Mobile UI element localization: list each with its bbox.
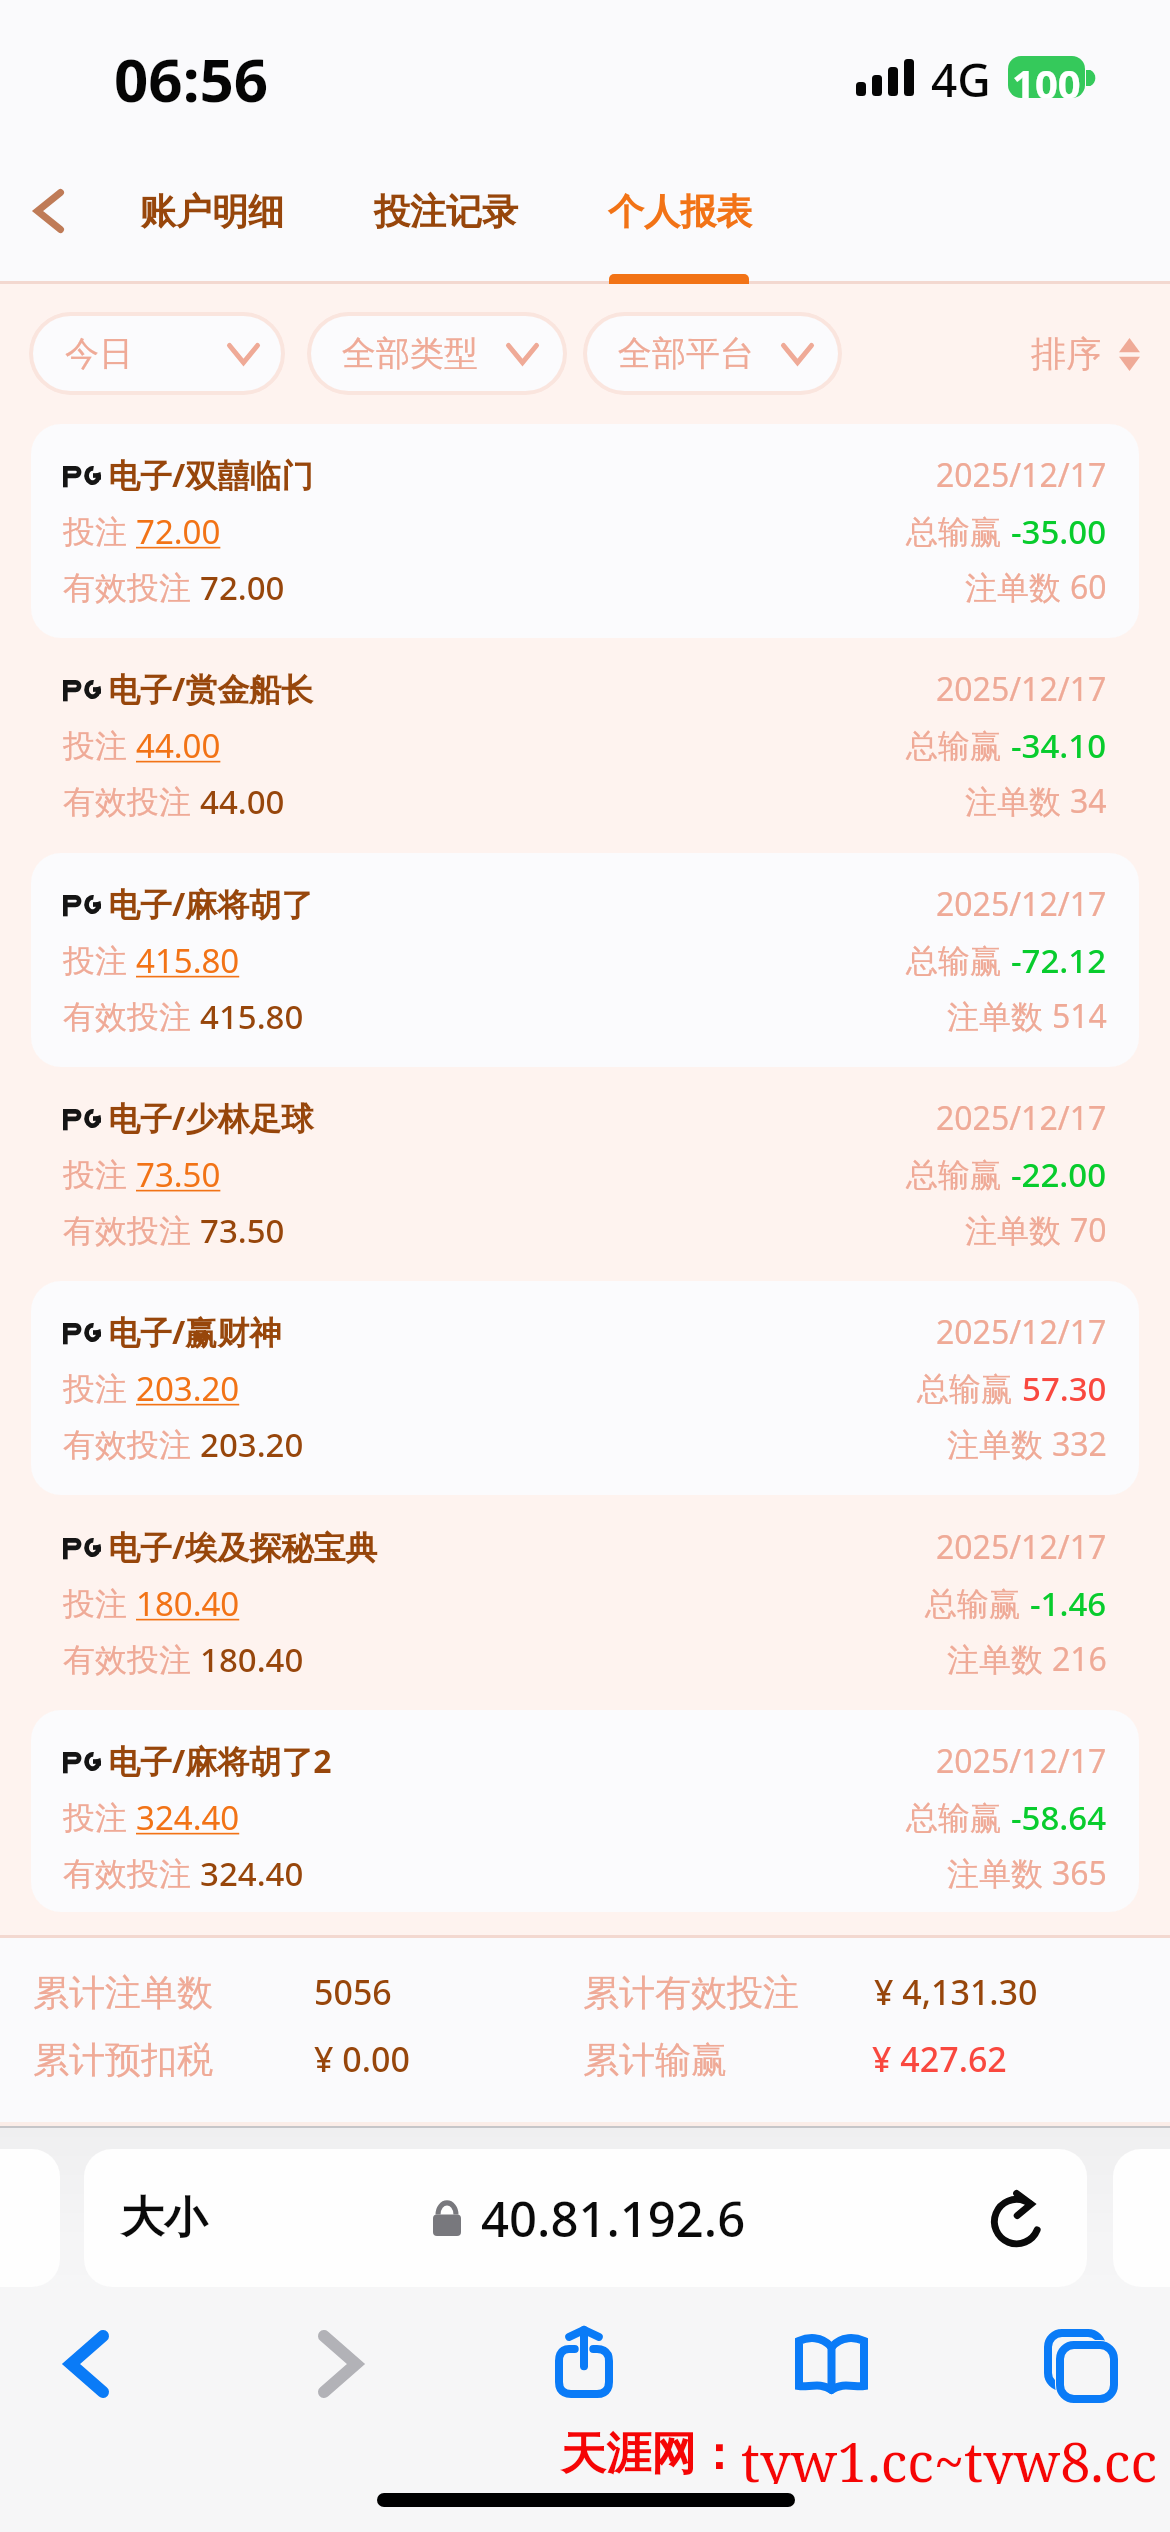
staticText: 投注 [63, 723, 136, 767]
staticText: 账户明细 [140, 189, 284, 234]
staticText: 总输赢 [906, 723, 1011, 767]
button[interactable]: Tabs [1031, 2316, 1127, 2412]
staticText: 总输赢 [917, 1366, 1022, 1410]
staticText: 投注 [63, 1581, 136, 1625]
button[interactable]: Back [39, 2316, 135, 2412]
button[interactable]: 个人报表 [592, 168, 768, 254]
staticText: 累计输赢 [583, 2037, 727, 2082]
staticText: 324.40 [136, 1795, 240, 1840]
staticText: 注单数 [947, 994, 1052, 1038]
staticText: 有效投注 [63, 779, 200, 823]
button[interactable]: Bookmarks [783, 2315, 879, 2411]
staticText: 72.00 [136, 509, 221, 554]
staticText: -72.12 [1011, 938, 1107, 983]
staticText: 有效投注 [63, 994, 200, 1038]
staticText: 5056 [314, 1969, 392, 2015]
staticText: -22.00 [1011, 1152, 1107, 1197]
staticText: 大小 [121, 2191, 207, 2245]
staticText: ¥ 4,131.30 [874, 1969, 1038, 2015]
staticText: 70 [1070, 1208, 1107, 1252]
staticText: 投注 [63, 509, 136, 553]
staticText: 有效投注 [63, 1422, 200, 1466]
button[interactable]: 电子/埃及探秘宝典 [0, 1496, 1170, 1710]
staticText: 44.00 [136, 723, 221, 768]
staticText: 总输赢 [906, 1795, 1011, 1839]
staticText: 100 [1012, 56, 1081, 98]
staticText: 06:56 [114, 38, 269, 120]
staticText: 44.00 [200, 779, 285, 824]
staticText: 全部类型 [342, 332, 478, 375]
button[interactable]: 全部类型 [311, 316, 563, 391]
staticText: -35.00 [1011, 509, 1107, 554]
staticText: 73.50 [136, 1152, 221, 1197]
staticText: 累计有效投注 [583, 1970, 799, 2015]
button[interactable]: Back [9, 170, 89, 252]
staticText: 电子/赏金船长 [108, 667, 314, 711]
staticText: 216 [1052, 1637, 1107, 1681]
button[interactable]: 电子/赢财神 [0, 1281, 1170, 1495]
staticText: 投注 [63, 938, 136, 982]
staticText: 有效投注 [63, 1208, 200, 1252]
staticText: 365 [1052, 1851, 1107, 1895]
staticText: 总输赢 [906, 938, 1011, 982]
staticText: 2025/12/17 [936, 1739, 1107, 1783]
staticText: 有效投注 [63, 1851, 200, 1895]
button[interactable]: 电子/双囍临门 [0, 424, 1170, 638]
staticText: 注单数 [947, 1851, 1052, 1895]
button[interactable]: 全部平台 [587, 316, 838, 391]
button[interactable]: 排序 [1023, 318, 1148, 390]
staticText: 34 [1070, 779, 1107, 823]
staticText: 415.80 [136, 938, 240, 983]
staticText: 投注记录 [374, 189, 518, 234]
staticText: 电子/埃及探秘宝典 [108, 1525, 378, 1569]
staticText: 2025/12/17 [936, 1096, 1107, 1140]
button[interactable] [84, 2149, 1087, 2287]
staticText: -58.64 [1011, 1795, 1107, 1840]
staticText: 60 [1070, 565, 1107, 609]
staticText: 电子/麻将胡了2 [108, 1739, 332, 1783]
staticText: 2025/12/17 [936, 667, 1107, 711]
staticText: 有效投注 [63, 565, 200, 609]
staticText: tyw1.cc~tyw8.cc [741, 2424, 1157, 2484]
staticText: -34.10 [1011, 723, 1107, 768]
staticText: 2025/12/17 [936, 882, 1107, 926]
staticText: 415.80 [200, 994, 304, 1039]
staticText: 2025/12/17 [936, 1310, 1107, 1354]
button[interactable]: 今日 [33, 316, 281, 391]
button[interactable]: 电子/少林足球 [0, 1067, 1170, 1281]
staticText: 注单数 [965, 779, 1070, 823]
button[interactable]: Share [536, 2313, 632, 2409]
staticText: 203.20 [136, 1366, 240, 1411]
button[interactable]: 电子/麻将胡了2 [0, 1710, 1170, 1912]
staticText: 注单数 [965, 565, 1070, 609]
staticText: 73.50 [200, 1208, 285, 1253]
staticText: 全部平台 [618, 332, 754, 375]
staticText: 332 [1052, 1422, 1107, 1466]
button[interactable]: 电子/麻将胡了 [0, 853, 1170, 1067]
button[interactable]: 账户明细 [124, 168, 300, 254]
staticText: 2025/12/17 [936, 453, 1107, 497]
button[interactable]: Reload [984, 2183, 1054, 2253]
staticText: 有效投注 [63, 1637, 200, 1681]
staticText: 180.40 [136, 1581, 240, 1626]
staticText: 累计注单数 [33, 1970, 213, 2015]
staticText: 57.30 [1022, 1366, 1107, 1411]
staticText: 电子/少林足球 [108, 1096, 314, 1140]
button[interactable]: Forward [292, 2316, 388, 2412]
staticText: 注单数 [947, 1422, 1052, 1466]
staticText: 投注 [63, 1795, 136, 1839]
button[interactable]: 电子/赏金船长 [0, 638, 1170, 852]
staticText: 电子/赢财神 [108, 1310, 282, 1354]
staticText: -1.46 [1030, 1581, 1107, 1626]
staticText: 投注 [63, 1366, 136, 1410]
staticText: 总输赢 [906, 509, 1011, 553]
staticText: 180.40 [200, 1637, 304, 1682]
staticText: 72.00 [200, 565, 285, 610]
staticText: 电子/麻将胡了 [108, 882, 314, 926]
staticText: 4G [931, 48, 991, 111]
button[interactable]: 投注记录 [358, 168, 534, 254]
staticText: 投注 [63, 1152, 136, 1196]
staticText: 324.40 [200, 1851, 304, 1896]
staticText: 今日 [65, 332, 133, 375]
staticText: 203.20 [200, 1422, 304, 1467]
